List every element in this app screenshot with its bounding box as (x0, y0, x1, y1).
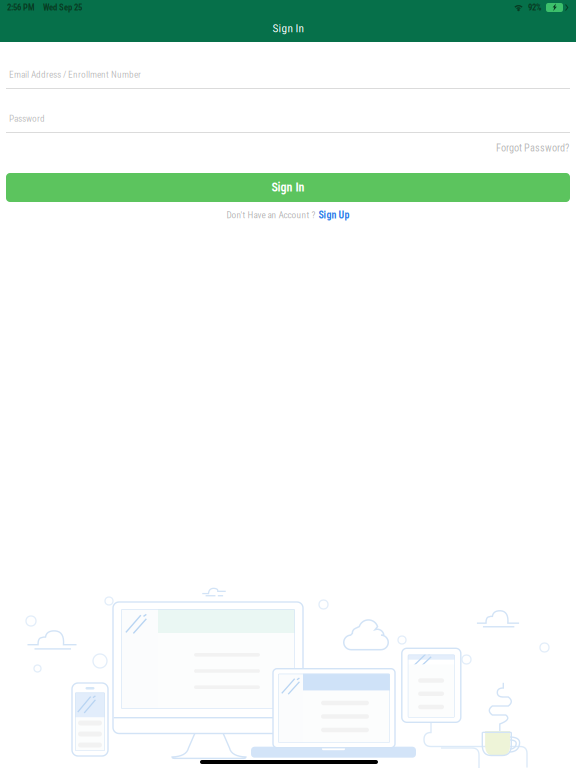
staticText: Email Address / Enrollment Number (9, 69, 141, 80)
button[interactable]: Sign In (6, 173, 570, 202)
staticText: Forgot Password? (496, 142, 569, 154)
staticText: Password (9, 113, 45, 124)
staticText: Sign In (271, 180, 304, 195)
staticText: 2:56 PM (7, 2, 35, 13)
button[interactable]: Forgot Password? (6, 133, 570, 154)
staticText: 92% (528, 2, 542, 13)
staticText: Wed Sep 25 (43, 2, 82, 13)
staticText: Don't Have an Account ? (226, 210, 315, 221)
staticText: Sign Up (318, 209, 349, 221)
button[interactable]: Don't Have an Account ? (226, 202, 349, 221)
staticText: Sign In (272, 22, 303, 35)
